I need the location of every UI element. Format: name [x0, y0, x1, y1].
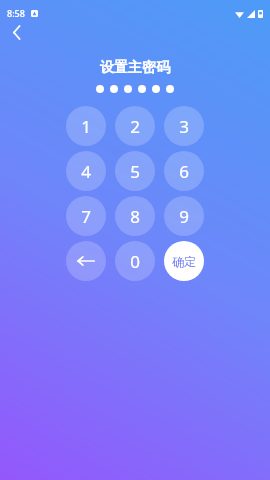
button[interactable]: 6 [164, 151, 204, 191]
staticText: 8:58 [7, 7, 25, 19]
button[interactable]: 3 [164, 106, 204, 146]
staticText: 5 [130, 160, 140, 183]
button[interactable]: 1 [66, 106, 106, 146]
staticText: 0 [130, 250, 140, 273]
button[interactable]: 0 [115, 241, 155, 281]
button[interactable]: Backspace [66, 241, 106, 281]
button[interactable]: 8 [115, 196, 155, 236]
staticText: 9 [179, 205, 189, 228]
staticText: 8 [130, 205, 140, 228]
staticText: 3 [179, 115, 189, 138]
staticText: 4 [81, 160, 91, 183]
button[interactable]: 7 [66, 196, 106, 236]
button[interactable]: 4 [66, 151, 106, 191]
staticText: 2 [130, 115, 140, 138]
staticText: 1 [81, 115, 91, 138]
button[interactable]: 2 [115, 106, 155, 146]
button[interactable]: 5 [115, 151, 155, 191]
button[interactable]: 9 [164, 196, 204, 236]
staticText: 6 [179, 160, 189, 183]
staticText: 确定 [172, 254, 196, 269]
button[interactable]: Back [4, 22, 30, 42]
button[interactable]: 确定 [164, 241, 204, 281]
staticText: 7 [81, 205, 91, 228]
staticText: 设置主密码 [0, 59, 270, 77]
